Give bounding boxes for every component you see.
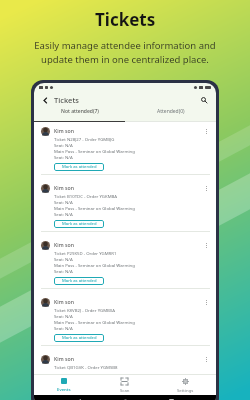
button[interactable]: More options — [202, 298, 210, 306]
staticText: Main Pass - Seminar on Global Warming — [54, 262, 135, 268]
button[interactable]: More options — [202, 355, 210, 363]
staticText: Kim son — [54, 355, 74, 362]
staticText: Seat: N/A — [54, 313, 73, 319]
button[interactable]: Kim son — [34, 293, 216, 350]
staticText: Tickets — [54, 95, 79, 105]
staticText: Seat: N/A — [54, 211, 73, 217]
staticText: Attended(0) — [157, 108, 185, 115]
button[interactable]: Attended(0) — [125, 108, 216, 115]
button[interactable]: More options — [202, 241, 210, 249]
staticText: Main Pass - Seminar on Global Warming — [54, 148, 135, 154]
staticText: Mark as attended — [62, 278, 97, 284]
button[interactable]: Mark as attended — [54, 277, 104, 285]
staticText: Kim son — [54, 241, 74, 248]
button[interactable]: Kim son — [34, 122, 216, 179]
staticText: Seat: N/A — [54, 325, 73, 331]
staticText: Easily manage attendee information and u… — [34, 39, 216, 66]
button[interactable]: Kim son — [34, 350, 216, 374]
staticText: Seat: N/A — [54, 142, 73, 148]
staticText: Ticket B10TDC - Order YGKMBA — [54, 193, 118, 199]
staticText: Seat: N/A — [54, 268, 73, 274]
staticText: Kim son — [54, 184, 74, 191]
staticText: Mark as attended — [62, 221, 97, 227]
staticText: Main Pass - Seminar on Global Warming — [54, 319, 135, 325]
staticText: Main Pass - Seminar on Global Warming — [54, 205, 135, 211]
button[interactable]: Search — [198, 94, 210, 106]
staticText: Kim son — [54, 298, 74, 305]
button[interactable]: More options — [202, 184, 210, 192]
button[interactable]: Mark as attended — [54, 334, 104, 342]
staticText: Ticket K8VB2J - Order YGMBXA — [54, 307, 116, 313]
button[interactable]: Settings — [155, 378, 216, 393]
button[interactable]: Kim son — [34, 179, 216, 236]
staticText: Seat: N/A — [54, 199, 73, 205]
staticText: Seat: N/A — [54, 256, 73, 262]
button[interactable]: Mark as attended — [54, 220, 104, 228]
button[interactable]: Not attended(7) — [34, 108, 125, 115]
staticText: Events — [57, 386, 71, 392]
button[interactable]: Scan — [94, 378, 155, 393]
staticText: Not attended(7) — [61, 108, 99, 115]
button[interactable]: Back — [40, 95, 51, 106]
button[interactable]: Kim son — [34, 236, 216, 293]
button[interactable]: Mark as attended — [54, 163, 104, 171]
staticText: Scan — [120, 387, 130, 393]
staticText: Mark as attended — [62, 164, 97, 170]
staticText: Tickets — [95, 8, 156, 31]
staticText: Mark as attended — [62, 335, 97, 341]
staticText: Ticket P29X5D - Order YGMRR1 — [54, 250, 117, 256]
button[interactable]: Events — [34, 378, 94, 392]
staticText: Ticket N28J27 - Order YGMBJG — [54, 136, 115, 142]
staticText: Seat: N/A — [54, 154, 73, 160]
button[interactable]: More options — [202, 127, 210, 135]
staticText: Settings — [177, 387, 194, 393]
staticText: Ticket QB1GVK - Order YGMSB8 — [54, 364, 118, 370]
staticText: Kim son — [54, 127, 74, 134]
